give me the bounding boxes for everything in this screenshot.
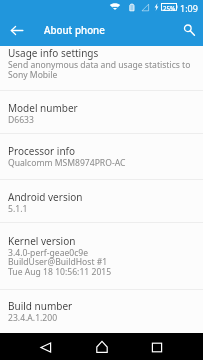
staticText: 23.4.A.1.200 (8, 312, 58, 324)
staticText: 25% (163, 4, 176, 12)
button[interactable]: Model number (0, 91, 203, 133)
staticText: 3.4.0-perf-geae0c9e (8, 247, 89, 259)
button[interactable]: Kernel version (0, 223, 203, 289)
staticText: 5.1.1 (8, 203, 28, 215)
staticText: Usage info settings (8, 46, 99, 60)
button[interactable]: Back (28, 333, 63, 360)
button[interactable]: Home (84, 333, 119, 360)
button[interactable]: Build number (0, 290, 203, 334)
button[interactable]: Navigate up (4, 14, 30, 46)
staticText: BuildUser@BuildHost #1 (8, 256, 108, 268)
staticText: Kernel version (8, 234, 76, 248)
button[interactable]: Android version (0, 180, 203, 222)
staticText: Build number (8, 299, 73, 313)
staticText: 1:09 (180, 2, 198, 14)
staticText: Sony Mobile (8, 69, 58, 81)
staticText: D6633 (8, 114, 34, 126)
staticText: Android version (8, 190, 83, 204)
staticText: Send anonymous data and usage statistics… (8, 59, 191, 71)
staticText: Tue Aug 18 10:56:11 2015 (8, 266, 112, 278)
staticText: Processor info (8, 144, 76, 158)
staticText: Qualcomm MSM8974PRO-AC (8, 157, 126, 169)
staticText: Model number (8, 101, 78, 115)
staticText: About phone (44, 24, 105, 37)
button[interactable]: Processor info (0, 134, 203, 180)
button[interactable]: Usage info settings (0, 46, 203, 90)
button[interactable]: Recent apps (139, 333, 174, 360)
button[interactable]: Search (176, 14, 202, 46)
